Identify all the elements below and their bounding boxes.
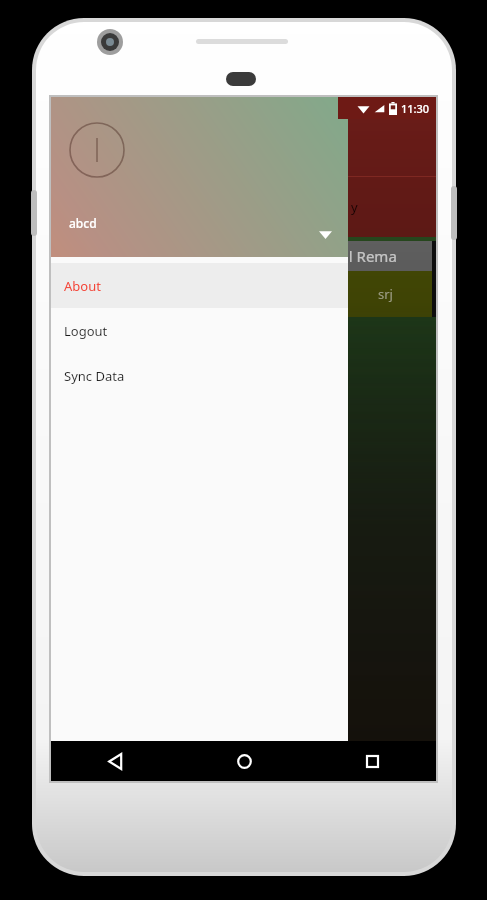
button[interactable]: abcd [51, 97, 348, 257]
staticText: abcd [69, 215, 97, 231]
button[interactable]: Sync Data [51, 353, 348, 398]
staticText: Sync Data [64, 367, 125, 385]
staticText: About [64, 277, 101, 295]
button[interactable]: Home [180, 741, 308, 781]
staticText: Logout [64, 322, 108, 340]
staticText: 11:30 [401, 101, 430, 116]
button[interactable]: Back [51, 741, 180, 781]
button[interactable]: Recents [308, 741, 436, 781]
staticText: y [351, 198, 358, 216]
staticText: Annual Rema [303, 246, 397, 266]
staticText: srj [378, 285, 393, 303]
button[interactable]: About [51, 263, 348, 308]
button[interactable]: Logout [51, 308, 348, 353]
button[interactable]: Toggle account list [312, 221, 338, 247]
